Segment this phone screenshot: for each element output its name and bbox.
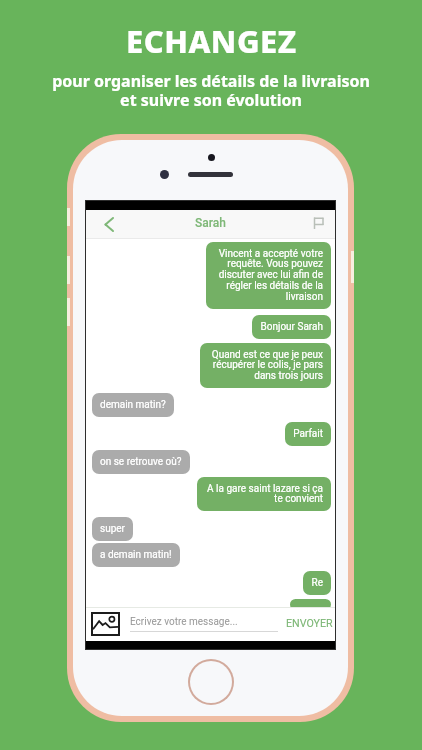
button[interactable]: Bonjour Sarah [252, 315, 331, 339]
staticText: Sarah [195, 216, 226, 230]
button[interactable]: Parfait [285, 422, 331, 446]
staticText: A la gare saint lazare si ça te convient [205, 483, 323, 505]
staticText: Parfait [293, 428, 323, 440]
staticText: Re [311, 577, 323, 589]
staticText: super [100, 523, 125, 535]
staticText: Ecrivez votre message... [130, 616, 238, 628]
button[interactable]: A la gare saint lazare si ça te convient [197, 477, 331, 511]
button[interactable]: Back [100, 215, 120, 233]
button[interactable]: super [92, 517, 133, 541]
staticText: on se retrouve où? [100, 456, 182, 468]
staticText: Quand est ce que je peux récupérer le co… [208, 349, 323, 382]
button[interactable]: Merci [290, 599, 331, 610]
button[interactable]: Quand est ce que je peux récupérer le co… [200, 343, 331, 388]
staticText: demain matin? [100, 399, 166, 411]
staticText: ENVOYER [286, 617, 333, 630]
button[interactable]: demain matin? [92, 393, 174, 417]
button[interactable]: a demain matin! [92, 543, 180, 567]
staticText: Vincent a accepté votre requête. Vous po… [214, 248, 323, 303]
staticText: ECHANGEZ [126, 20, 297, 62]
staticText: a demain matin! [100, 549, 172, 561]
button[interactable]: Vincent a accepté votre requête. Vous po… [206, 242, 331, 309]
button[interactable]: Re [303, 571, 331, 595]
button[interactable]: Attach image [91, 612, 120, 636]
staticText: Bonjour Sarah [260, 321, 323, 333]
button[interactable]: ENVOYER [283, 613, 336, 634]
button[interactable]: on se retrouve où? [92, 450, 190, 474]
button[interactable]: Report conversation [308, 214, 328, 234]
staticText: pour organiser les détails de la livrais… [52, 70, 370, 111]
